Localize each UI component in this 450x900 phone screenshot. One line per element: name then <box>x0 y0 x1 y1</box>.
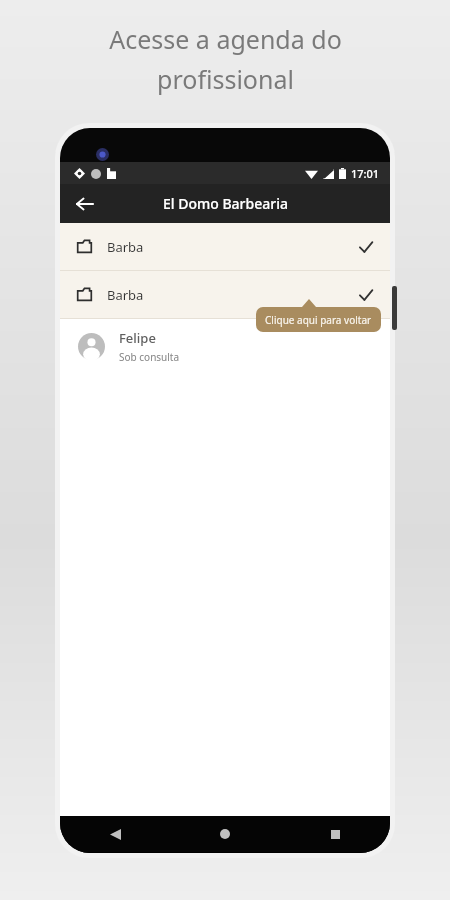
staticText: Acesse a agenda do <box>109 22 342 56</box>
staticText: Sob consulta <box>119 350 180 364</box>
staticText: Barba <box>107 286 144 304</box>
staticText: profissional <box>157 62 294 96</box>
button[interactable]: Back <box>66 185 104 223</box>
button[interactable]: Barba <box>60 271 390 318</box>
staticText: El Domo Barbearia <box>163 194 288 213</box>
button[interactable]: Barba <box>60 223 390 270</box>
button[interactable]: Clique aqui para voltar <box>256 307 381 332</box>
staticText: 17:01 <box>351 166 380 181</box>
button[interactable]: Back <box>95 816 135 852</box>
button[interactable]: Felipe <box>60 319 390 373</box>
staticText: Barba <box>107 238 144 256</box>
staticText: Clique aqui para voltar <box>265 313 372 327</box>
staticText: Felipe <box>119 329 156 347</box>
button[interactable]: Home <box>205 816 245 852</box>
button[interactable]: Recent apps <box>315 816 355 852</box>
